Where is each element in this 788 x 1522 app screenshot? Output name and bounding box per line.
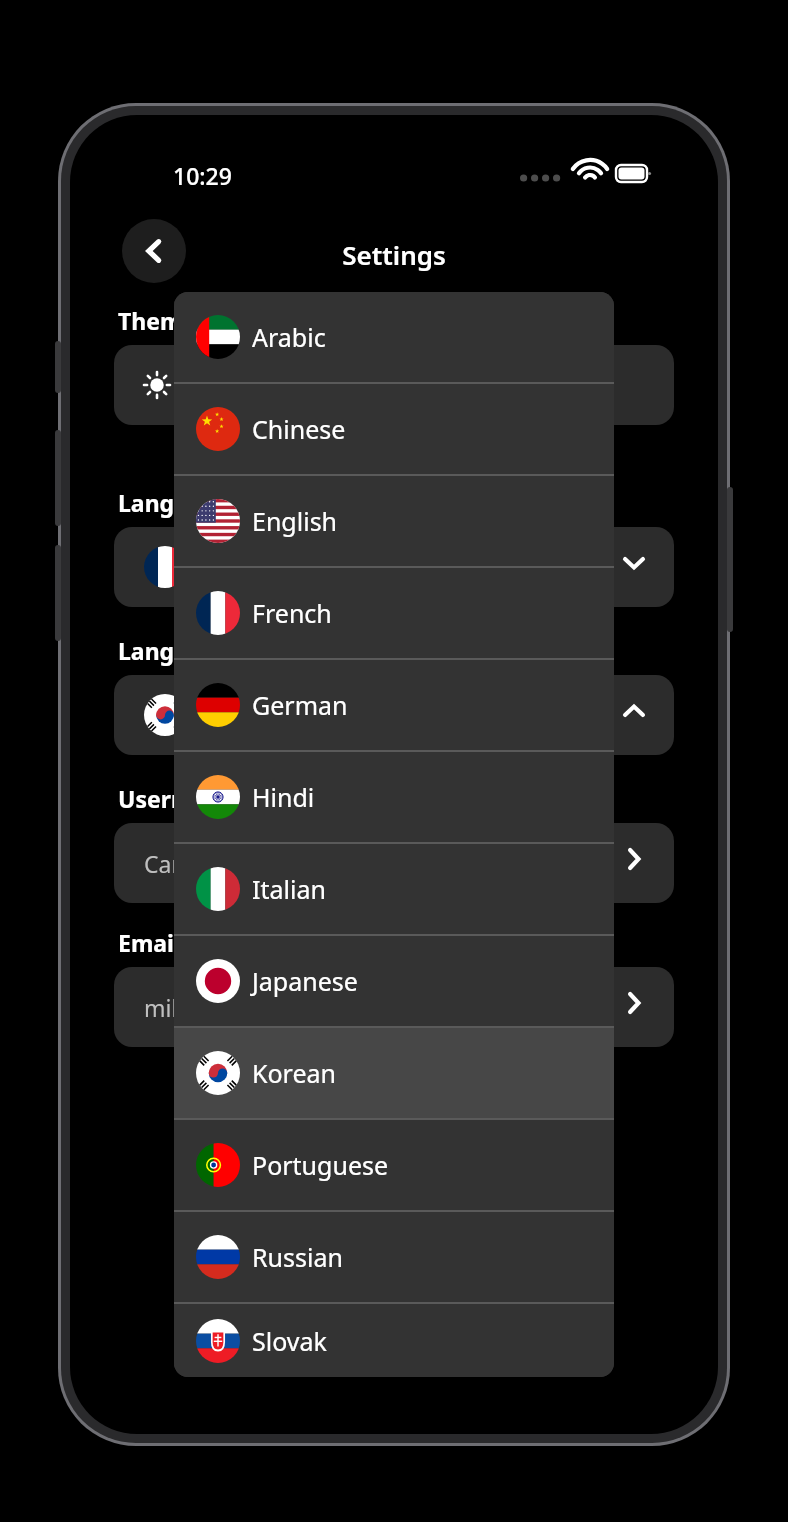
staticText: Language [118,635,232,666]
button[interactable]: Korean [114,675,674,755]
staticText: Language [118,487,232,518]
staticText: Hindi [252,780,315,814]
button[interactable]: System [114,345,674,425]
button[interactable]: Russian [174,1212,614,1302]
staticText: French [200,552,274,583]
staticText: System [184,370,263,401]
staticText: Korean [200,700,278,731]
staticText: French [252,596,332,630]
button[interactable]: Portuguese [174,1120,614,1210]
staticText: Slovak [252,1324,327,1358]
button[interactable]: Korean [174,1028,614,1118]
staticText: Theme [118,305,197,336]
staticText: Cameron [144,848,244,879]
staticText: English [252,504,338,538]
staticText: Italian [252,872,326,906]
staticText: Russian [252,1240,343,1274]
staticText: mike@mail.com [144,992,317,1023]
button[interactable]: Italian [174,844,614,934]
staticText: Email [118,927,181,958]
staticText: 10:29 [173,160,232,191]
button[interactable]: Back [122,219,186,283]
button[interactable]: French [114,527,674,607]
button[interactable]: French [174,568,614,658]
staticText: Arabic [252,320,326,354]
button[interactable]: English [174,476,614,566]
staticText: Username [118,783,236,814]
staticText: Settings [70,237,718,272]
button[interactable]: Slovak [174,1304,614,1377]
button[interactable]: Chinese [174,384,614,474]
button[interactable]: mike@mail.com [114,967,674,1047]
staticText: German [252,688,348,722]
button[interactable]: Japanese [174,936,614,1026]
staticText: Chinese [252,412,346,446]
button[interactable]: German [174,660,614,750]
button[interactable]: Hindi [174,752,614,842]
button[interactable]: Arabic [174,292,614,382]
staticText: Portuguese [252,1148,389,1182]
staticText: Japanese [252,964,358,998]
staticText: Korean [252,1056,337,1090]
button[interactable]: Cameron [114,823,674,903]
